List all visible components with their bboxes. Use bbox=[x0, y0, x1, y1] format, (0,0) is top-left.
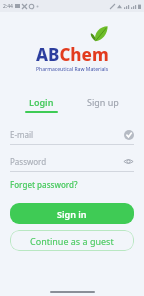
button[interactable]: E-mail bbox=[10, 129, 134, 145]
button[interactable]: Continue as a guest bbox=[10, 230, 134, 251]
staticText: E-mail bbox=[10, 129, 123, 140]
staticText: Login bbox=[29, 96, 54, 108]
button[interactable]: Sign in bbox=[10, 203, 134, 224]
other: Show password bbox=[123, 156, 134, 167]
staticText: Password bbox=[10, 156, 123, 167]
button[interactable]: Forget password? bbox=[10, 179, 78, 190]
staticText: Pharmaceutical Raw Materials bbox=[36, 66, 109, 72]
button[interactable]: Sign up bbox=[72, 96, 134, 108]
staticText: Sign up bbox=[87, 96, 119, 108]
staticText: ABChem bbox=[36, 43, 109, 66]
staticText: Sign in bbox=[57, 208, 87, 220]
staticText: 2:44 bbox=[3, 3, 13, 10]
staticText: Continue as a guest bbox=[30, 235, 114, 247]
staticText: Forget password? bbox=[10, 179, 78, 190]
button[interactable]: Password bbox=[10, 156, 134, 172]
other: Email valid bbox=[123, 129, 134, 140]
button[interactable]: Login bbox=[10, 96, 72, 113]
